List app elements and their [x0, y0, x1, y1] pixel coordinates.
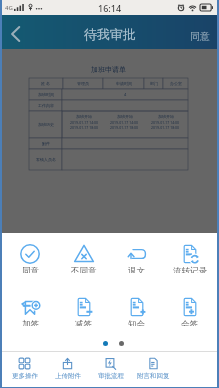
button[interactable]: 流转记录 — [163, 243, 216, 273]
staticText: 4G — [5, 4, 13, 12]
staticText: 加班历史 — [38, 122, 54, 127]
staticText: 附言和回复 — [137, 372, 170, 380]
button[interactable]: 退文 — [110, 243, 163, 273]
staticText: 流转记录 — [173, 266, 207, 273]
button[interactable]: Back — [2, 15, 28, 49]
staticText: 加签 — [22, 319, 39, 326]
button[interactable]: 不同意 — [57, 243, 110, 273]
staticText: 4 — [124, 92, 127, 97]
staticText: 16:14 — [98, 2, 122, 14]
button[interactable]: 同意 — [3, 243, 57, 273]
staticText: 办公室 — [170, 81, 182, 86]
staticText: 管理员 — [77, 81, 89, 86]
staticText: 不同意 — [71, 266, 97, 273]
staticText: 2019-01-17 14:00 — [151, 120, 180, 125]
staticText: 加班申请单 — [29, 65, 188, 74]
staticText: 退文 — [128, 266, 145, 273]
staticText: 2019-01-17 18:00 — [110, 125, 139, 130]
button[interactable]: 知会 — [110, 296, 163, 326]
staticText: 上传附件 — [55, 372, 81, 380]
button[interactable]: 减签 — [57, 296, 110, 326]
staticText: 2019-01-17 18:00 — [151, 125, 180, 130]
staticText: 减签 — [75, 319, 92, 326]
button[interactable]: 同意 — [181, 15, 217, 49]
button[interactable]: 更多操作 — [3, 352, 46, 387]
staticText: 附件 — [42, 141, 50, 146]
staticText: 加班开始 — [76, 114, 92, 119]
staticText: 工作内容 — [38, 103, 54, 108]
button[interactable]: 附言和回复 — [132, 352, 175, 387]
staticText: 待我审批 — [84, 26, 136, 42]
button[interactable]: 加签 — [3, 296, 57, 326]
staticText: 零钱人员名 — [36, 157, 56, 162]
staticText: 加班开始 — [117, 114, 133, 119]
staticText: 2019-01-17 14:00 — [70, 120, 99, 125]
staticText: 姓 名 — [41, 81, 51, 86]
staticText: 同意 — [22, 266, 39, 273]
staticText: 更多操作 — [12, 372, 38, 380]
staticText: 同意 — [190, 30, 210, 43]
staticText: 加班时间 — [38, 92, 54, 97]
staticText: 审批流程 — [98, 372, 124, 380]
staticText: 知会 — [128, 319, 145, 326]
button[interactable]: 上传附件 — [46, 352, 89, 387]
staticText: 部门 — [150, 81, 158, 86]
staticText: 加班开始 — [158, 114, 174, 119]
staticText: 2019-01-17 18:00 — [70, 125, 99, 130]
button[interactable]: 会签 — [163, 296, 216, 326]
button[interactable]: 审批流程 — [89, 352, 132, 387]
staticText: 申请时间 — [116, 81, 132, 86]
staticText: 会签 — [181, 319, 198, 326]
staticText: 2019-01-17 14:00 — [110, 120, 139, 125]
